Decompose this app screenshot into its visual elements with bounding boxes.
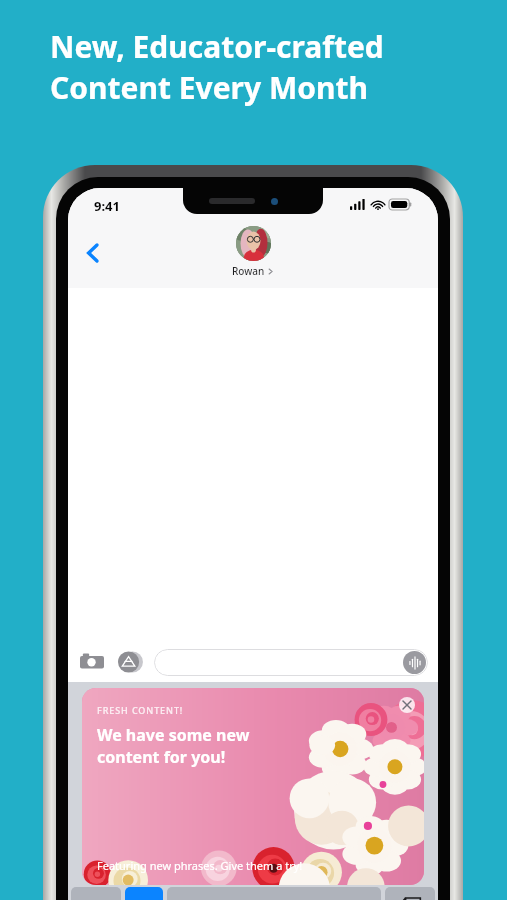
button[interactable]: Camera xyxy=(78,648,106,676)
staticText: Rowan xyxy=(232,264,265,278)
button[interactable]: Delete xyxy=(385,887,435,900)
staticText: We have some new xyxy=(97,724,250,746)
button[interactable]: Apps xyxy=(116,648,144,676)
staticText: 9:41 xyxy=(94,197,120,215)
staticText: Content Every Month xyxy=(50,67,368,108)
staticText: Featuring new phrases. Give them a try! xyxy=(97,858,303,873)
button[interactable]: Back xyxy=(76,236,110,270)
button[interactable]: ABC xyxy=(71,887,121,900)
staticText: content for you! xyxy=(97,746,226,768)
button[interactable]: Rowan xyxy=(68,226,438,278)
button[interactable]: Audio message xyxy=(403,651,426,674)
button[interactable]: Audio message xyxy=(154,649,428,676)
button[interactable]: Close xyxy=(399,697,415,713)
staticText: New, Educator-crafted xyxy=(50,26,384,67)
staticText: FRESH CONTENT! xyxy=(97,704,184,716)
button[interactable]: FRESH CONTENT! xyxy=(82,688,424,885)
button[interactable]: Stickers xyxy=(125,887,163,900)
